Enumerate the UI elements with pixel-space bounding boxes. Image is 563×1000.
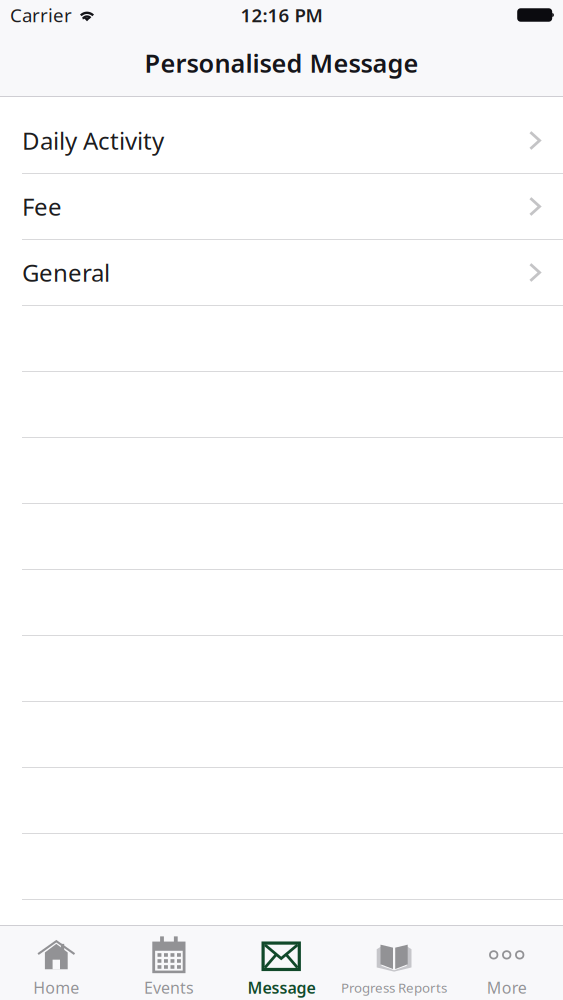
- button[interactable]: More: [450, 926, 563, 1000]
- staticText: General: [22, 257, 110, 288]
- staticText: 12:16 PM: [240, 3, 322, 27]
- staticText: Message: [247, 977, 315, 998]
- button[interactable]: Daily Activity: [0, 108, 563, 174]
- button[interactable]: Fee: [0, 174, 563, 240]
- button[interactable]: Events: [113, 926, 225, 1000]
- staticText: Progress Reports: [341, 979, 447, 996]
- staticText: Carrier: [10, 3, 72, 27]
- staticText: Events: [144, 977, 194, 998]
- staticText: Fee: [22, 191, 62, 222]
- button[interactable]: Message: [225, 926, 338, 1000]
- staticText: Daily Activity: [22, 125, 164, 156]
- staticText: Home: [33, 977, 79, 998]
- staticText: Personalised Message: [144, 46, 418, 80]
- button[interactable]: Home: [0, 926, 113, 1000]
- button[interactable]: Progress Reports: [338, 926, 450, 1000]
- button[interactable]: General: [0, 240, 563, 306]
- staticText: More: [487, 977, 527, 998]
